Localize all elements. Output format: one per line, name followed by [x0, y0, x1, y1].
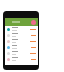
button[interactable] [5, 50, 38, 56]
button[interactable] [5, 56, 38, 62]
button[interactable] [5, 26, 38, 32]
button[interactable] [5, 32, 38, 38]
button[interactable] [5, 44, 38, 50]
button[interactable] [5, 38, 38, 44]
button[interactable]: Profile [31, 20, 36, 25]
